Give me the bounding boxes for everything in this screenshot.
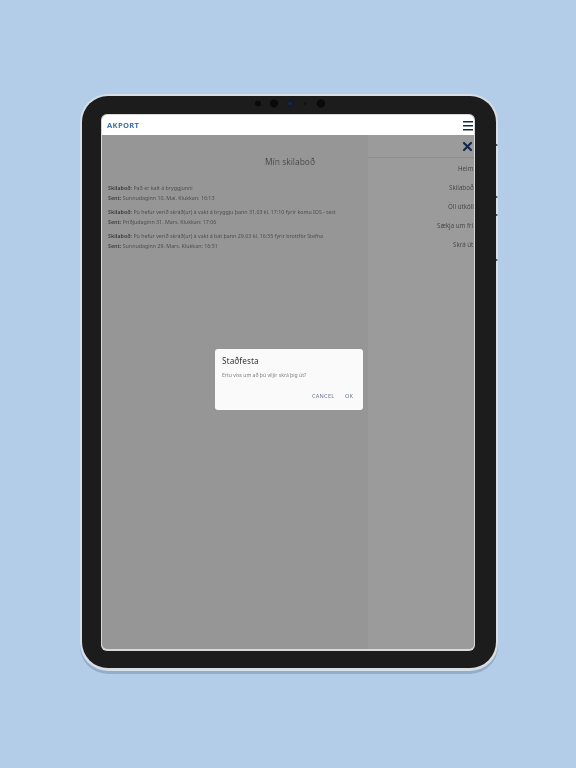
staticText: AKPORT bbox=[107, 120, 140, 130]
staticText: Skilaboð: Það er kalt á bryggjunni bbox=[108, 184, 193, 191]
staticText: Staðfesta bbox=[222, 355, 259, 366]
button[interactable]: Öll útköll bbox=[368, 196, 474, 215]
staticText: Sent: Sunnudaginn 29. Mars. Klukkan: 16:… bbox=[108, 242, 218, 249]
button[interactable]: OK bbox=[340, 389, 359, 403]
staticText: Skrá út bbox=[453, 240, 474, 248]
staticText: Öll útköll bbox=[448, 202, 474, 210]
staticText: Sent: Þriðjudaginn 31. Mars. Klukkan: 17… bbox=[108, 218, 217, 225]
button[interactable]: Skilaboð bbox=[368, 177, 474, 196]
staticText: OK bbox=[345, 392, 354, 400]
staticText: Skilaboð: Þú hefur verið skráð(ur) á vak… bbox=[108, 208, 336, 215]
staticText: Skilaboð bbox=[449, 183, 474, 191]
staticText: Sent: Sunnudaginn 10. Maí. Klukkan: 16:1… bbox=[108, 194, 215, 201]
button[interactable]: Heim bbox=[368, 158, 474, 177]
staticText: Heim bbox=[458, 164, 474, 172]
button[interactable]: Skrá út bbox=[368, 234, 474, 253]
staticText: Skilaboð: Þú hefur verið skráð(ur) á vak… bbox=[108, 232, 324, 239]
button[interactable]: Menu bbox=[454, 115, 474, 135]
staticText: CANCEL bbox=[312, 392, 335, 400]
button[interactable]: CANCEL bbox=[307, 389, 340, 403]
staticText: Ertu viss um að þú viljir skrá þig út? bbox=[222, 372, 307, 379]
staticText: Mín skilaboð bbox=[106, 156, 474, 167]
button[interactable]: Sækja um frí bbox=[368, 215, 474, 234]
staticText: Sækja um frí bbox=[437, 221, 474, 229]
button[interactable]: Close drawer bbox=[457, 138, 474, 155]
